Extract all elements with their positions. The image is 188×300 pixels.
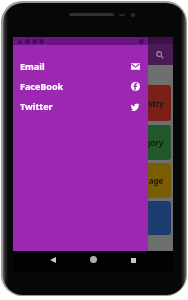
- button[interactable]: [15, 201, 171, 235]
- button[interactable]: Back: [43, 250, 63, 270]
- button[interactable]: Language: [15, 163, 171, 198]
- button[interactable]: Email: [13, 56, 148, 76]
- staticText: Chemistry: [123, 98, 164, 109]
- button[interactable]: Category: [15, 125, 171, 160]
- staticText: Category: [127, 137, 164, 148]
- staticText: Email: [20, 60, 45, 72]
- button[interactable]: Home: [83, 249, 103, 269]
- button[interactable]: Search: [152, 47, 168, 63]
- button[interactable]: FaceBook: [13, 76, 148, 96]
- staticText: Language: [124, 175, 164, 186]
- button[interactable]: Chemistry: [15, 85, 171, 121]
- button[interactable]: Twitter: [13, 96, 148, 116]
- staticText: FaceBook: [20, 80, 64, 92]
- staticText: Twitter: [20, 100, 53, 112]
- button[interactable]: Recents: [123, 250, 143, 270]
